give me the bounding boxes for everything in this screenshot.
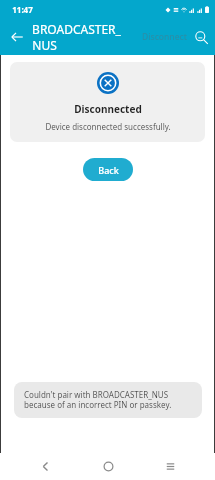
staticText: Back	[98, 164, 119, 176]
staticText: Disconnected	[74, 102, 142, 116]
staticText: 11:47	[12, 4, 33, 15]
button[interactable]: Back	[83, 158, 133, 181]
button[interactable]: Disconnected	[10, 62, 205, 142]
button[interactable]: Disconnect	[140, 27, 189, 47]
button[interactable]: Search	[189, 25, 213, 49]
staticText: NUS	[32, 37, 57, 53]
staticText: Disconnect	[142, 31, 187, 43]
button[interactable]: Recent apps	[153, 453, 187, 480]
button[interactable]: Back	[28, 453, 62, 480]
staticText: BROADCASTER_	[32, 21, 121, 37]
staticText: Couldn't pair with BROADCASTER_NUS becau…	[24, 389, 192, 411]
button[interactable]: Home	[91, 453, 125, 480]
staticText: Device disconnected successfully.	[45, 121, 171, 132]
button[interactable]: Back	[4, 24, 30, 50]
